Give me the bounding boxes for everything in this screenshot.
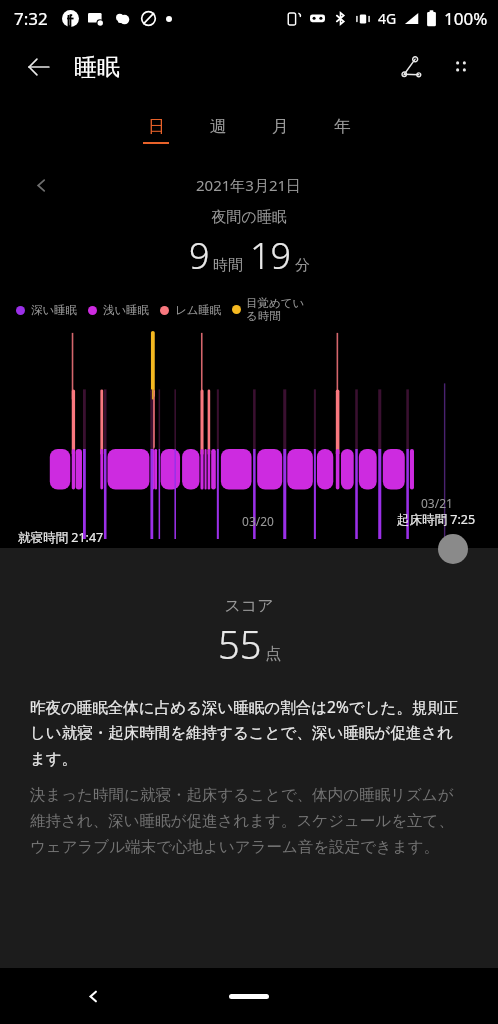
staticText: 夜間の睡眠 xyxy=(0,208,498,227)
staticText: 19 xyxy=(250,231,292,280)
button[interactable]: 日 xyxy=(125,112,187,148)
staticText: 9 xyxy=(189,231,210,280)
staticText: 点 xyxy=(265,644,281,664)
staticText: 2021年3月21日 xyxy=(196,175,302,195)
staticText: 03/21 xyxy=(421,495,453,511)
button[interactable]: 週 xyxy=(187,112,249,148)
staticText: 55 xyxy=(218,618,262,670)
staticText: 目覚めてい る時間 xyxy=(246,296,305,323)
staticText: 起床時間 7:25 xyxy=(397,511,476,528)
staticText: 4G xyxy=(378,9,397,28)
button[interactable]: 前の日 xyxy=(28,172,54,198)
staticText: 分 xyxy=(295,256,310,275)
button[interactable]: その他のオプション xyxy=(440,46,482,88)
staticText: 03/20 xyxy=(18,513,498,529)
staticText: 就寝時間 21:47 xyxy=(18,529,104,546)
button[interactable]: 戻る xyxy=(78,981,108,1011)
staticText: 昨夜の睡眠全体に占める深い睡眠の割合は2%でした。規則正しい就寝・起床時間を維持… xyxy=(30,696,468,769)
staticText: レム睡眠 xyxy=(175,303,222,317)
button[interactable]: ホーム xyxy=(229,994,269,999)
staticText: 月 xyxy=(272,116,289,137)
staticText: 深い睡眠 xyxy=(31,303,78,317)
button[interactable]: 年 xyxy=(311,112,373,148)
staticText: 時間 xyxy=(213,256,243,275)
button[interactable]: 共有 xyxy=(390,46,432,88)
button[interactable]: 詳細を展開 xyxy=(438,534,468,564)
button[interactable]: 戻る xyxy=(22,50,56,84)
staticText: 100% xyxy=(444,7,488,30)
staticText: 日 xyxy=(148,116,165,137)
staticText: 7:32 xyxy=(14,7,48,30)
staticText: スコア xyxy=(0,596,498,616)
staticText: 浅い睡眠 xyxy=(103,303,150,317)
staticText: 決まった時間に就寝・起床することで、体内の睡眠リズムが維持され、深い睡眠が促進さ… xyxy=(30,785,468,857)
staticText: 睡眠 xyxy=(74,53,120,82)
staticText: 週 xyxy=(210,116,227,137)
staticText: 年 xyxy=(334,116,351,137)
button[interactable]: 月 xyxy=(249,112,311,148)
